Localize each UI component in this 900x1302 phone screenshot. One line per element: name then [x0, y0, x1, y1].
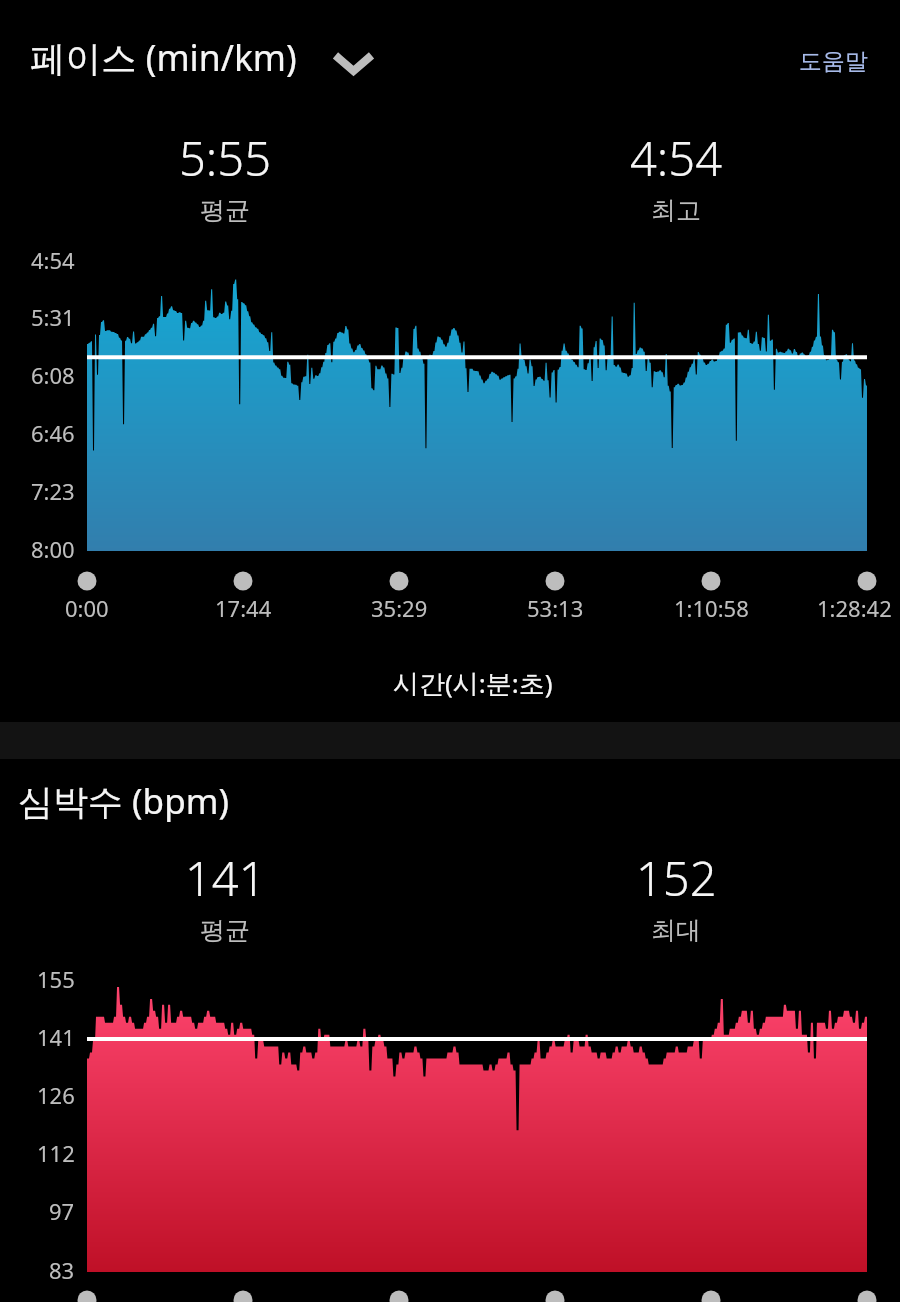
staticText: 도움말	[799, 47, 868, 76]
staticText: 최대	[651, 915, 701, 946]
button[interactable]: Heart rate graph	[87, 981, 867, 1272]
staticText: 97	[49, 1196, 75, 1226]
staticText: 53:13	[527, 593, 584, 623]
staticText: 페이스 (min/km)	[30, 33, 297, 81]
button[interactable]: 141	[105, 846, 345, 946]
staticText: 152	[636, 846, 717, 910]
staticText: 1:10:58	[674, 593, 749, 623]
staticText: 6:08	[31, 360, 75, 390]
staticText: 141	[37, 1022, 75, 1052]
staticText: 8:00	[31, 534, 75, 564]
staticText: 4:54	[630, 126, 722, 190]
staticText: 평균	[200, 195, 250, 226]
staticText: 1:28:42	[817, 593, 892, 623]
button[interactable]: 5:55	[105, 126, 345, 226]
staticText: 심박수 (bpm)	[18, 777, 229, 825]
staticText: 6:46	[31, 418, 75, 448]
button[interactable]: Pace graph	[87, 262, 867, 551]
staticText: 7:23	[31, 476, 75, 506]
staticText: 126	[37, 1080, 75, 1110]
button[interactable]: 페이스 (min/km)	[30, 32, 365, 82]
staticText: 35:29	[371, 593, 428, 623]
button[interactable]: 4:54	[556, 126, 796, 226]
staticText: 최고	[651, 195, 701, 226]
staticText: 4:54	[31, 245, 75, 275]
other: Change metric	[303, 32, 365, 82]
staticText: 0:00	[65, 593, 109, 623]
staticText: 5:31	[31, 302, 75, 332]
staticText: 평균	[200, 915, 250, 946]
staticText: 155	[37, 964, 75, 994]
staticText: 141	[185, 846, 266, 910]
staticText: 112	[37, 1138, 75, 1168]
staticText: 83	[49, 1255, 75, 1285]
staticText: 시간(시:분:초)	[393, 665, 553, 701]
button[interactable]: 152	[556, 846, 796, 946]
button[interactable]: 심박수 (bpm)	[0, 762, 900, 822]
button[interactable]: 도움말	[799, 47, 868, 76]
staticText: 17:44	[215, 593, 272, 623]
staticText: 5:55	[179, 126, 271, 190]
